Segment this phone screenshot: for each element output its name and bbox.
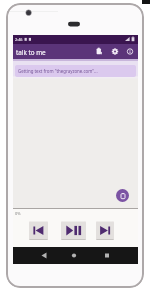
- button[interactable]: [96, 221, 114, 240]
- button[interactable]: [94, 45, 104, 58]
- staticText: talk to me: [16, 48, 46, 57]
- staticText: 0%: [15, 211, 21, 216]
- button[interactable]: [100, 249, 114, 262]
- button[interactable]: [37, 249, 51, 262]
- button[interactable]: [125, 45, 135, 58]
- button[interactable]: [61, 221, 86, 240]
- button[interactable]: [29, 221, 48, 240]
- staticText: 2:46: [15, 37, 23, 42]
- button[interactable]: [110, 45, 120, 58]
- button[interactable]: [116, 189, 129, 202]
- button[interactable]: Getting text from "thegrayzone.com"...: [15, 65, 136, 77]
- staticText: Getting text from "thegrayzone.com"...: [18, 68, 98, 74]
- button[interactable]: [67, 249, 81, 262]
